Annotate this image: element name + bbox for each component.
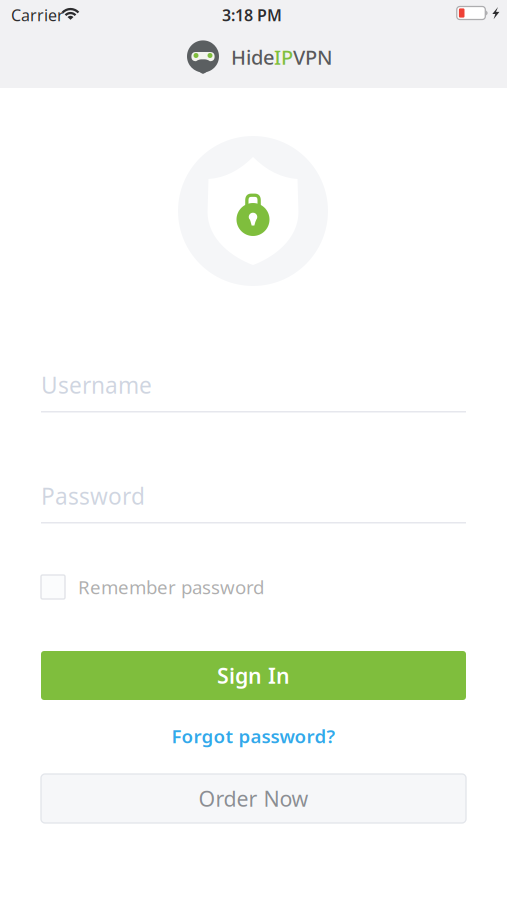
button[interactable]: Remember password: [41, 572, 466, 602]
button[interactable]: Sign In: [41, 651, 466, 700]
staticText: Password: [41, 481, 145, 511]
staticText: Username: [41, 370, 152, 400]
staticText: 3:18 PM: [222, 4, 282, 26]
staticText: VPN: [293, 44, 333, 70]
staticText: Order Now: [198, 784, 308, 813]
button[interactable]: Order Now: [41, 774, 466, 823]
button[interactable]: Forgot password?: [41, 723, 466, 749]
staticText: Remember password: [78, 575, 264, 599]
staticText: Sign In: [217, 661, 290, 690]
staticText: Carrier: [11, 4, 64, 26]
staticText: Hide: [231, 44, 274, 70]
staticText: Forgot password?: [171, 724, 335, 748]
staticText: IP: [274, 44, 293, 70]
